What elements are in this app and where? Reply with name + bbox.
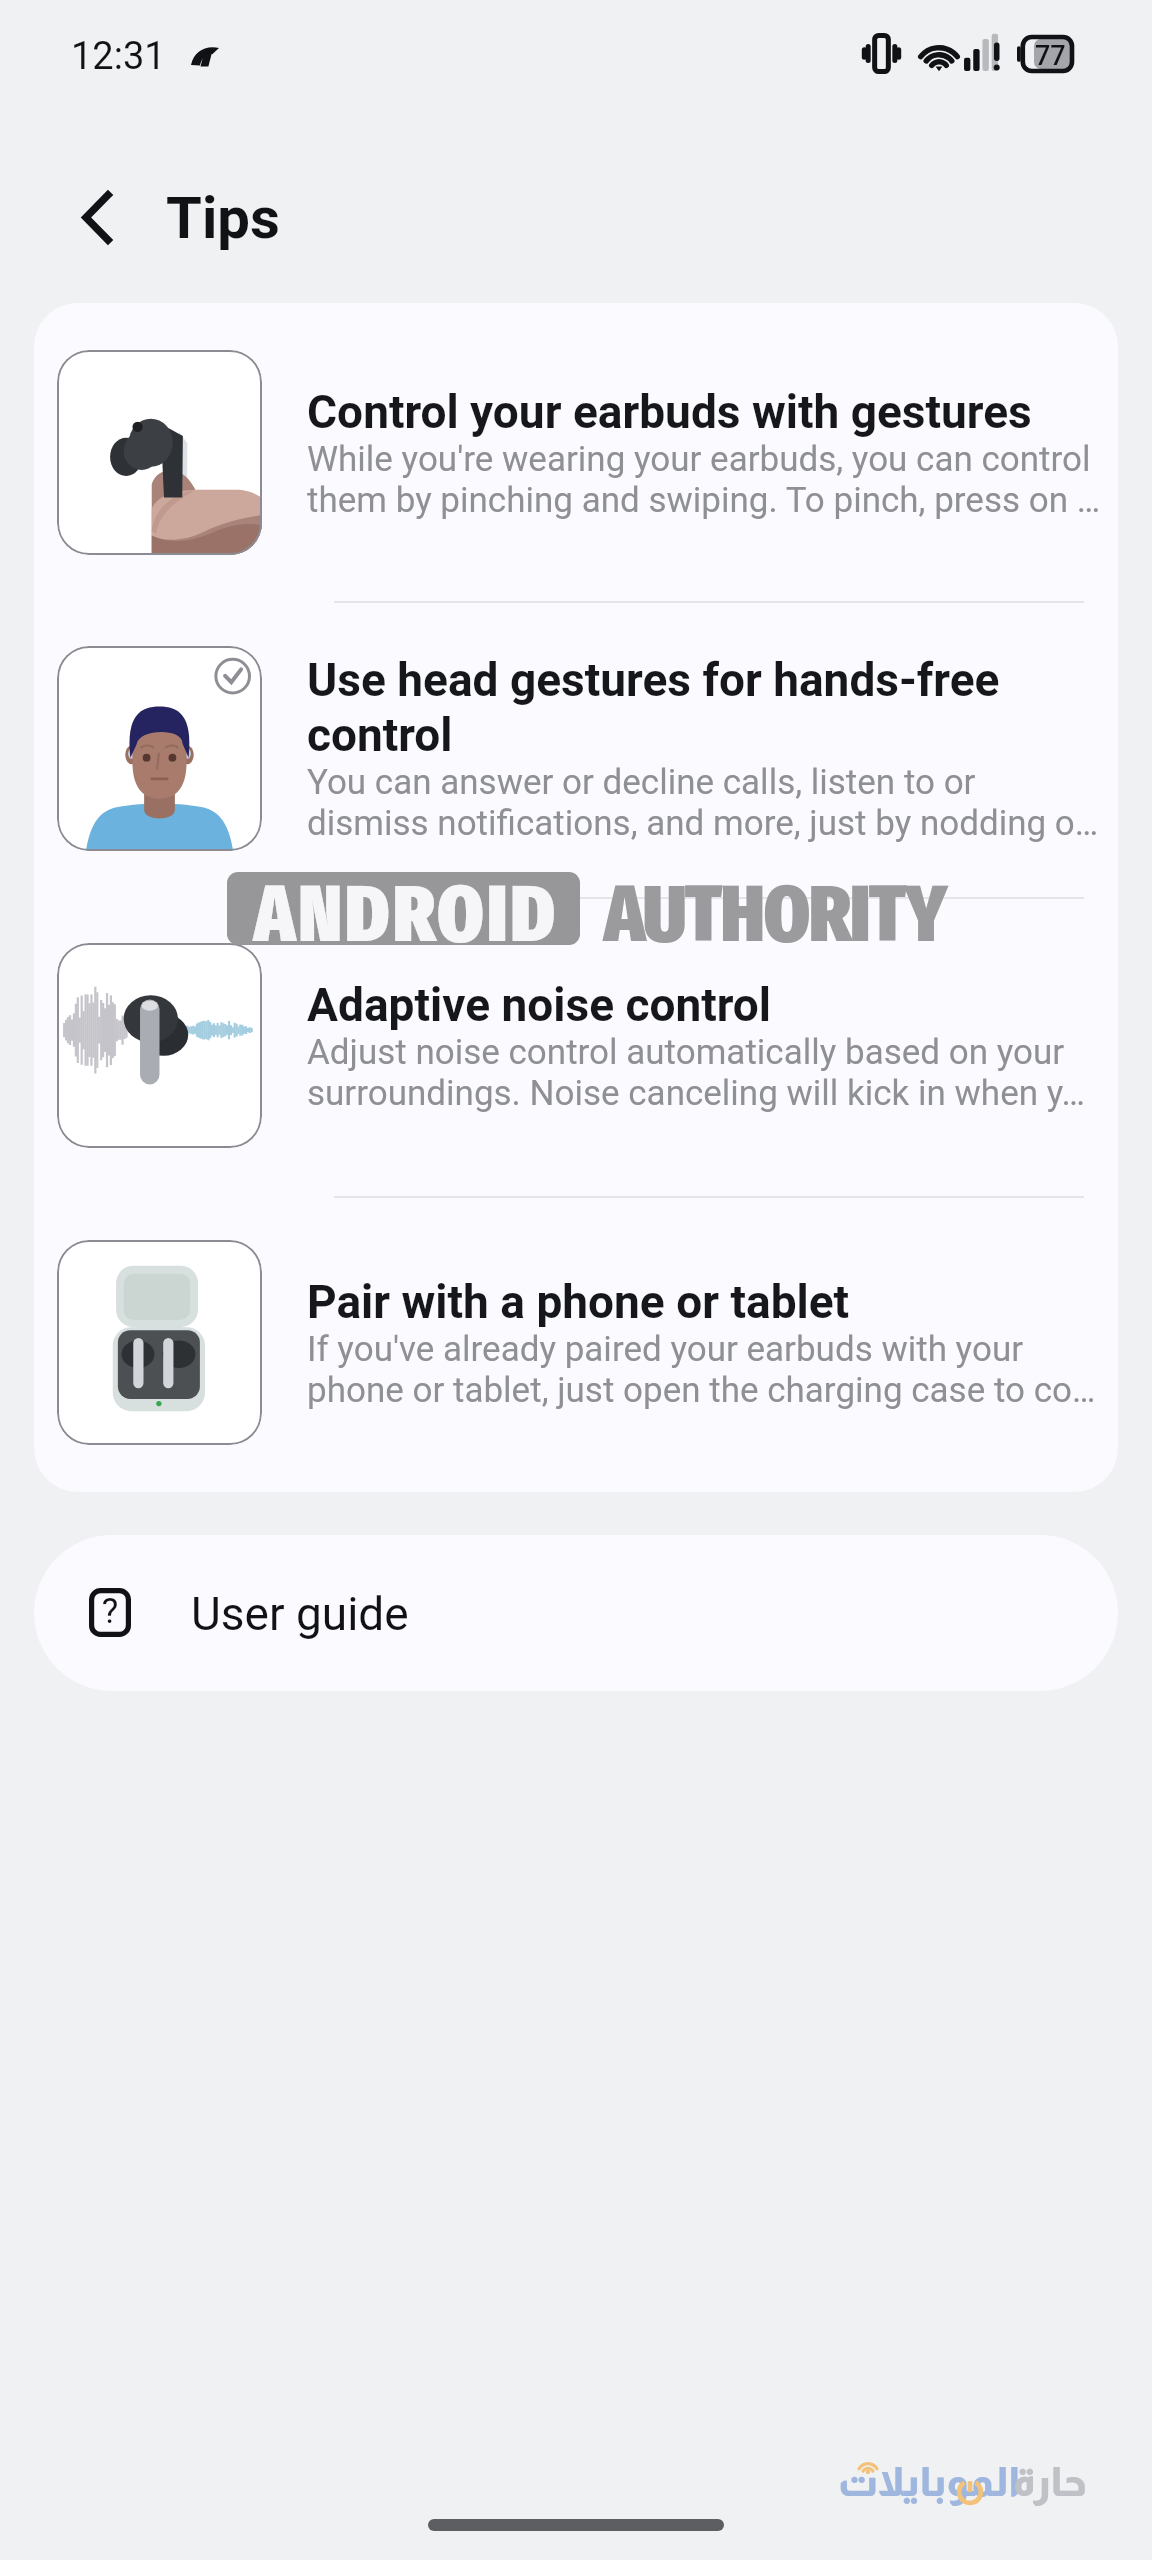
button[interactable]: Control your earbuds with gestures	[34, 303, 1118, 601]
staticText: If you've already paired your earbuds wi…	[307, 1329, 1096, 1411]
staticText: User guide	[191, 1587, 409, 1641]
staticText: AUTHORITY	[604, 866, 946, 962]
button[interactable]: Use head gestures for hands-free control	[34, 599, 1118, 897]
staticText: 12:31	[71, 34, 166, 79]
staticText: الموبايلات	[838, 2460, 1021, 2505]
staticText: Tips	[166, 184, 280, 252]
staticText: You can answer or decline calls, listen …	[307, 762, 1099, 844]
staticText: حارة	[1013, 2460, 1087, 2505]
staticText: 77	[1035, 40, 1066, 72]
button[interactable]: Back	[55, 175, 139, 259]
staticText: ANDROID	[254, 866, 559, 962]
button[interactable]: Pair with a phone or tablet	[34, 1193, 1118, 1491]
staticText: While you're wearing your earbuds, you c…	[307, 439, 1101, 521]
staticText: ?	[96, 1591, 124, 1635]
button[interactable]: ?	[34, 1535, 1118, 1691]
staticText: Use head gestures for hands-free control	[307, 652, 1000, 762]
staticText: Adjust noise control automatically based…	[307, 1032, 1085, 1114]
staticText: Control your earbuds with gestures	[307, 384, 1032, 439]
button[interactable]: Adaptive noise control	[34, 896, 1118, 1194]
staticText: Adaptive noise control	[307, 977, 771, 1032]
staticText: Pair with a phone or tablet	[307, 1274, 850, 1329]
